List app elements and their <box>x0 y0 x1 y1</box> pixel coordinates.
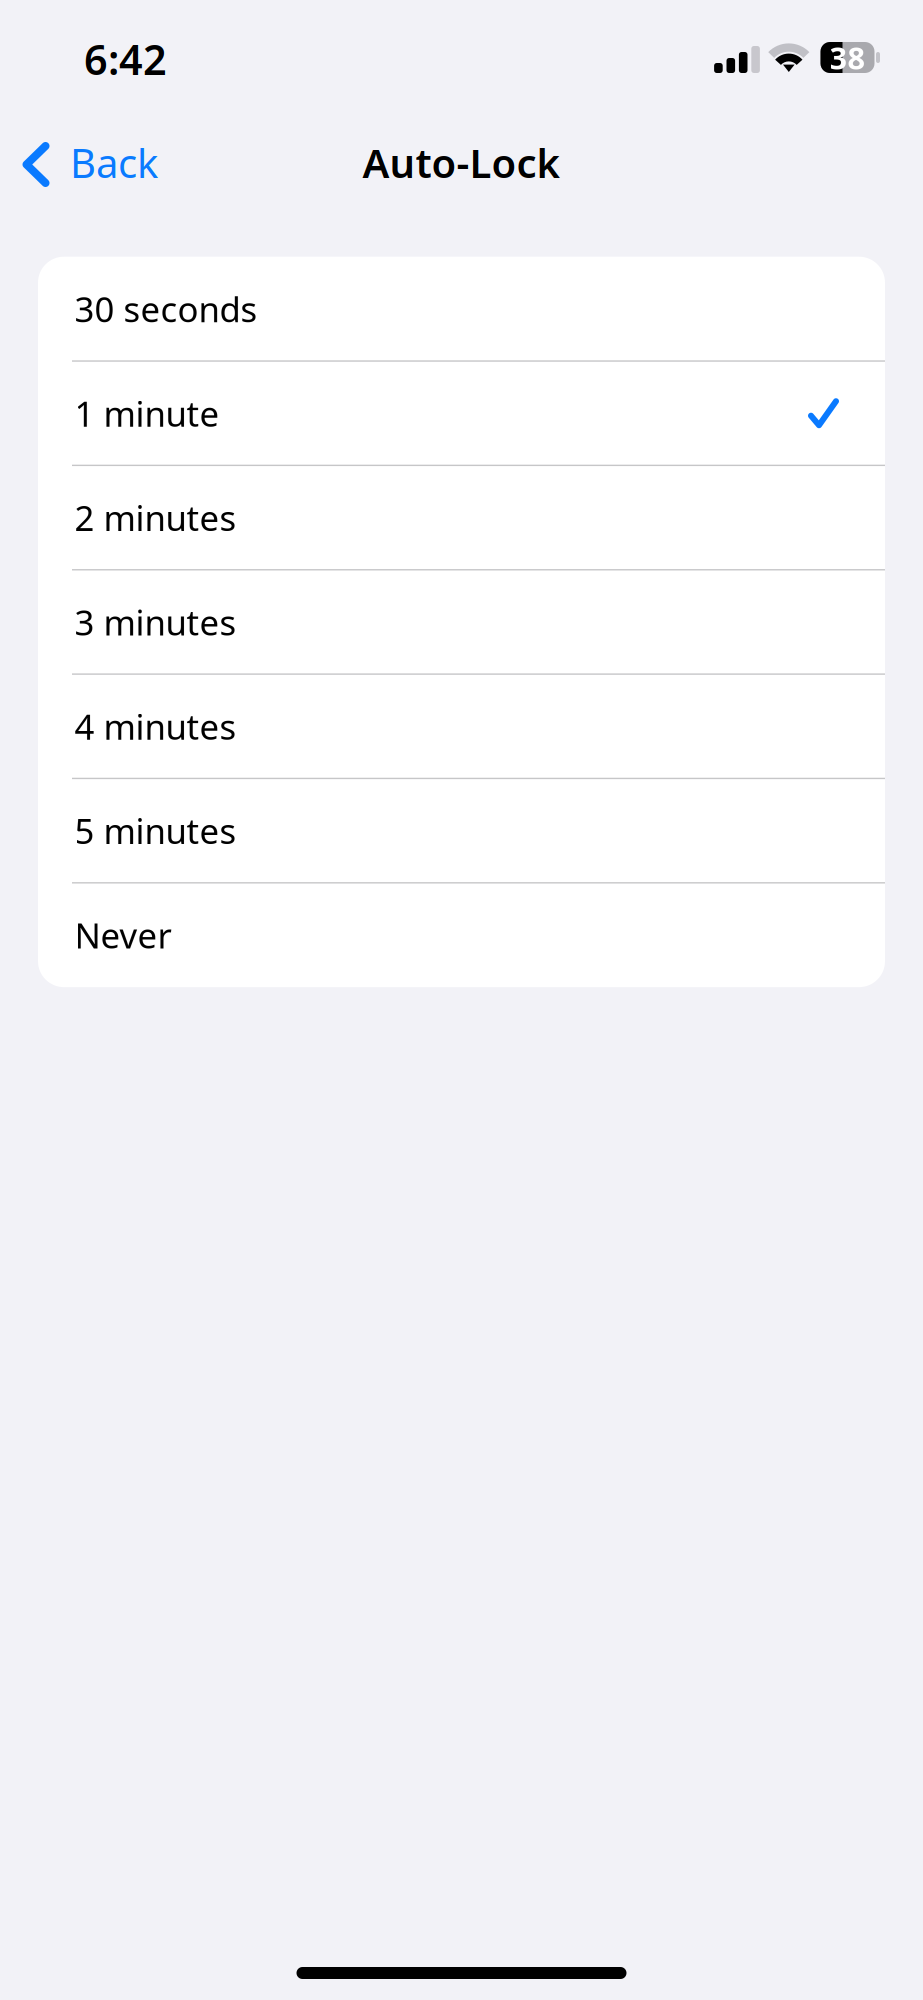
button[interactable]: 2 minutes <box>38 465 885 570</box>
button[interactable]: 5 minutes <box>38 778 885 883</box>
staticText: Never <box>74 912 171 958</box>
staticText: Auto-Lock <box>362 136 560 189</box>
staticText: 2 minutes <box>74 495 236 541</box>
button[interactable]: 30 seconds <box>38 257 885 361</box>
button[interactable]: 1 minute <box>38 361 885 465</box>
staticText: Back <box>70 136 158 189</box>
staticText: 6:42 <box>84 32 167 86</box>
staticText: 38 <box>829 37 865 78</box>
button[interactable]: 3 minutes <box>38 570 885 674</box>
staticText: 30 seconds <box>74 286 257 332</box>
staticText: 3 minutes <box>74 599 236 645</box>
staticText: 1 minute <box>74 390 219 436</box>
staticText: 5 minutes <box>74 808 236 854</box>
staticText: 4 minutes <box>74 703 236 749</box>
button[interactable]: Never <box>38 883 885 987</box>
button[interactable]: Back <box>0 121 178 203</box>
button[interactable]: 4 minutes <box>38 674 885 778</box>
